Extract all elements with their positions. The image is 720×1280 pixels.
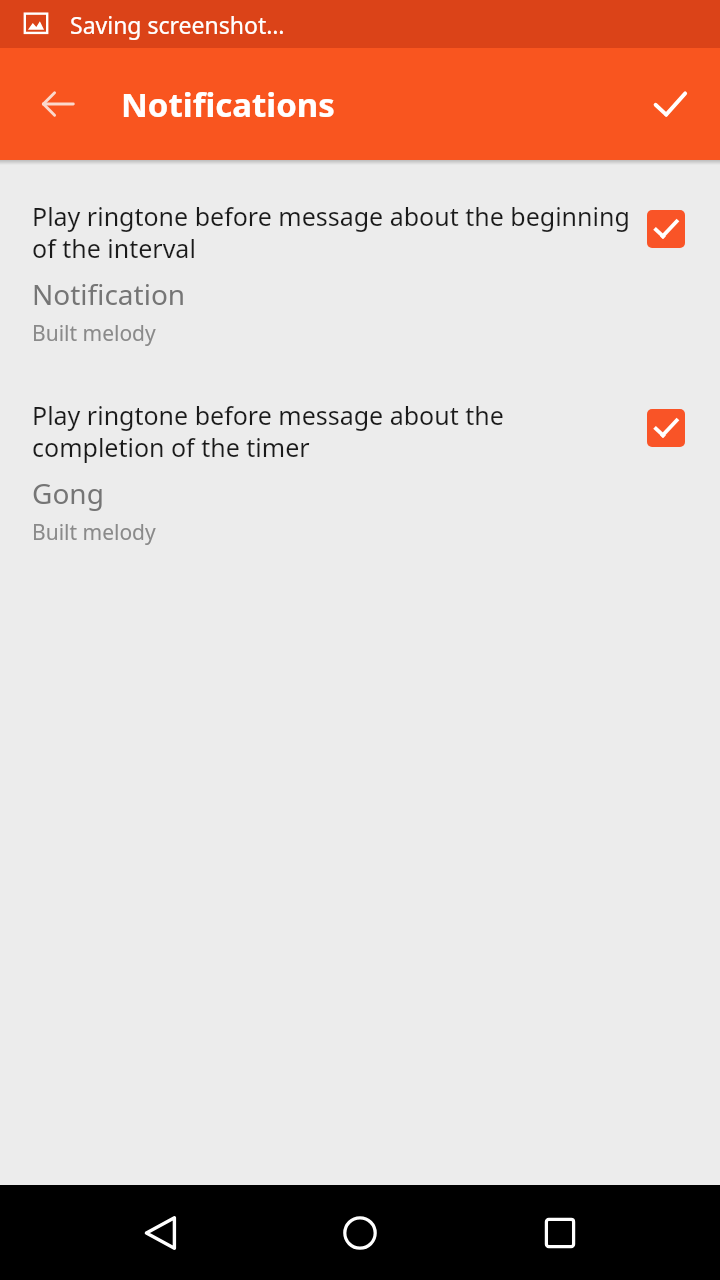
staticText: Built melody — [32, 319, 156, 348]
button[interactable]: Enable ringtone — [642, 404, 690, 452]
button[interactable]: Back — [28, 74, 88, 134]
button[interactable]: Enable ringtone — [642, 205, 690, 253]
button[interactable]: Back — [112, 1185, 208, 1280]
staticText: Play ringtone before message about the b… — [32, 199, 630, 265]
staticText: Saving screenshot… — [70, 9, 285, 40]
button[interactable]: Recent apps — [512, 1185, 608, 1280]
staticText: Play ringtone before message about the c… — [32, 398, 630, 464]
button[interactable]: Play ringtone before message about the b… — [0, 195, 720, 352]
button[interactable]: Play ringtone before message about the c… — [0, 394, 720, 551]
staticText: Notifications — [121, 82, 335, 127]
staticText: Built melody — [32, 518, 156, 547]
button[interactable]: Home — [312, 1185, 408, 1280]
staticText: Gong — [32, 474, 104, 512]
button[interactable]: Done — [638, 72, 702, 136]
staticText: Notification — [32, 275, 186, 313]
